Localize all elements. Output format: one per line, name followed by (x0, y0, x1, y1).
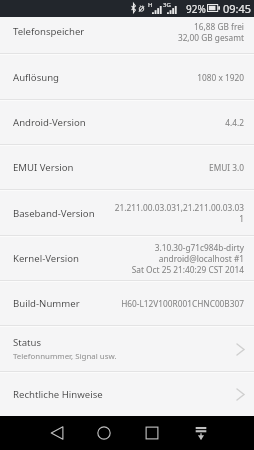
staticText: H (148, 1, 153, 9)
staticText: Android-Version (13, 116, 86, 129)
staticText: 09:45 (223, 1, 252, 16)
staticText: Telefonspeicher (13, 25, 85, 38)
button[interactable]: Home (81, 416, 127, 450)
staticText: 1080 x 1920 (197, 72, 244, 83)
staticText: EMUI 3.0 (209, 162, 244, 173)
staticText: H60-L12V100R001CHNC00B307 (121, 298, 244, 309)
button[interactable]: Status (0, 326, 254, 372)
staticText: 32,00 GB gesamt (177, 32, 244, 43)
button[interactable]: Build-Nummer (0, 281, 254, 326)
staticText: 4.4.2 (225, 117, 244, 128)
button[interactable]: Recent apps (129, 416, 175, 450)
staticText: Auflösung (13, 71, 59, 84)
staticText: 92% (186, 2, 206, 16)
button[interactable]: Hide navigation bar (178, 416, 224, 450)
button[interactable]: Telefonspeicher (0, 9, 254, 54)
staticText: EMUI Version (13, 161, 74, 174)
staticText: 16,88 GB frei (194, 21, 244, 32)
staticText: 1 (239, 213, 244, 224)
staticText: Telefonnummer, Signal usw. (13, 351, 117, 362)
button[interactable]: Auflösung (0, 54, 254, 100)
button[interactable]: Back (34, 416, 80, 450)
staticText: android@localhost #1 (158, 253, 244, 264)
staticText: Kernel-Version (13, 252, 79, 265)
button[interactable]: EMUI Version (0, 145, 254, 190)
button[interactable]: Kernel-Version (0, 236, 254, 281)
staticText: 3.10.30-g71c984b-dirty (154, 242, 244, 253)
button[interactable]: Android-Version (0, 100, 254, 145)
staticText: 21.211.00.03.031,21.211.00.03.03 (114, 202, 244, 213)
staticText: 3G (163, 1, 171, 9)
button[interactable]: Rechtliche Hinweise (0, 372, 254, 416)
staticText: Status (13, 336, 42, 349)
staticText: Sat Oct 25 21:40:29 CST 2014 (131, 264, 244, 275)
staticText: Build-Nummer (13, 297, 80, 310)
staticText: Rechtliche Hinweise (13, 388, 103, 401)
button[interactable]: Baseband-Version (0, 190, 254, 236)
staticText: Baseband-Version (13, 207, 95, 220)
